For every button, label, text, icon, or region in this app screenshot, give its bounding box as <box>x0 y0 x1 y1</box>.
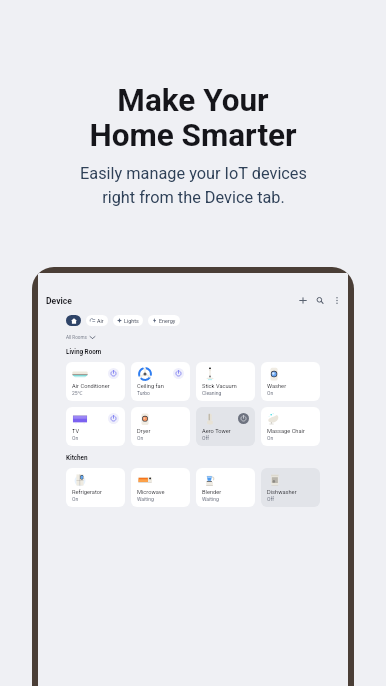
staticText: Ceiling fan <box>137 383 164 390</box>
button[interactable]: Air Conditioner <box>66 362 125 401</box>
staticText: Lights <box>124 318 139 324</box>
staticText: Air Conditioner <box>72 383 110 390</box>
staticText: Aero Tower <box>202 428 231 435</box>
staticText: On <box>72 496 79 502</box>
button[interactable]: Toggle Aero Tower <box>238 413 249 424</box>
button[interactable]: All Rooms <box>66 335 95 340</box>
staticText: On <box>267 435 274 441</box>
staticText: Blender <box>202 489 222 496</box>
staticText: Kitchen <box>66 454 88 461</box>
button[interactable]: TV <box>66 407 125 446</box>
button[interactable]: Search <box>314 295 325 306</box>
staticText: Off <box>267 496 274 502</box>
button[interactable]: Energy <box>148 315 180 326</box>
staticText: Device <box>46 296 72 306</box>
staticText: Refrigerator <box>72 489 102 496</box>
staticText: Microwave <box>137 489 165 496</box>
staticText: All Rooms <box>66 335 87 340</box>
staticText: Make Your <box>117 82 269 119</box>
staticText: Turbo <box>137 390 150 396</box>
button[interactable]: Microwave <box>131 468 190 507</box>
button[interactable]: Dryer <box>131 407 190 446</box>
staticText: Waiting <box>202 496 219 502</box>
staticText: Easily manage your IoT devices right fro… <box>80 164 307 207</box>
staticText: Home Smarter <box>89 117 297 154</box>
staticText: Washer <box>267 383 287 390</box>
button[interactable]: Lights <box>113 315 143 326</box>
button[interactable]: Toggle Air Conditioner <box>108 368 119 379</box>
button[interactable]: Blender <box>196 468 255 507</box>
button[interactable]: Ceiling fan <box>131 362 190 401</box>
staticText: Cleaning <box>202 390 222 396</box>
button[interactable]: Add <box>297 295 308 306</box>
button[interactable]: Refrigerator <box>66 468 125 507</box>
button[interactable]: Aero Tower <box>196 407 255 446</box>
staticText: Energy <box>159 318 176 324</box>
button[interactable]: Toggle Ceiling fan <box>173 368 184 379</box>
staticText: Waiting <box>137 496 154 502</box>
button[interactable]: Washer <box>261 362 320 401</box>
staticText: Air <box>97 318 104 324</box>
button[interactable]: Dishwasher <box>261 468 320 507</box>
staticText: Dryer <box>137 428 151 435</box>
button[interactable]: Massage Chair <box>261 407 320 446</box>
staticText: 25℃ <box>72 390 83 397</box>
staticText: Living Room <box>66 348 102 355</box>
staticText: TV <box>72 428 80 435</box>
staticText: On <box>137 435 144 441</box>
button[interactable]: Air <box>86 315 108 326</box>
staticText: On <box>72 435 79 441</box>
button[interactable]: Toggle TV <box>108 413 119 424</box>
button[interactable]: Stick Vacuum <box>196 362 255 401</box>
staticText: Off <box>202 435 209 441</box>
button[interactable]: More options <box>331 295 342 306</box>
button[interactable]: Home <box>66 315 81 326</box>
staticText: Dishwasher <box>267 489 297 496</box>
staticText: Massage Chair <box>267 428 305 435</box>
staticText: On <box>267 390 274 396</box>
staticText: Stick Vacuum <box>202 383 237 390</box>
